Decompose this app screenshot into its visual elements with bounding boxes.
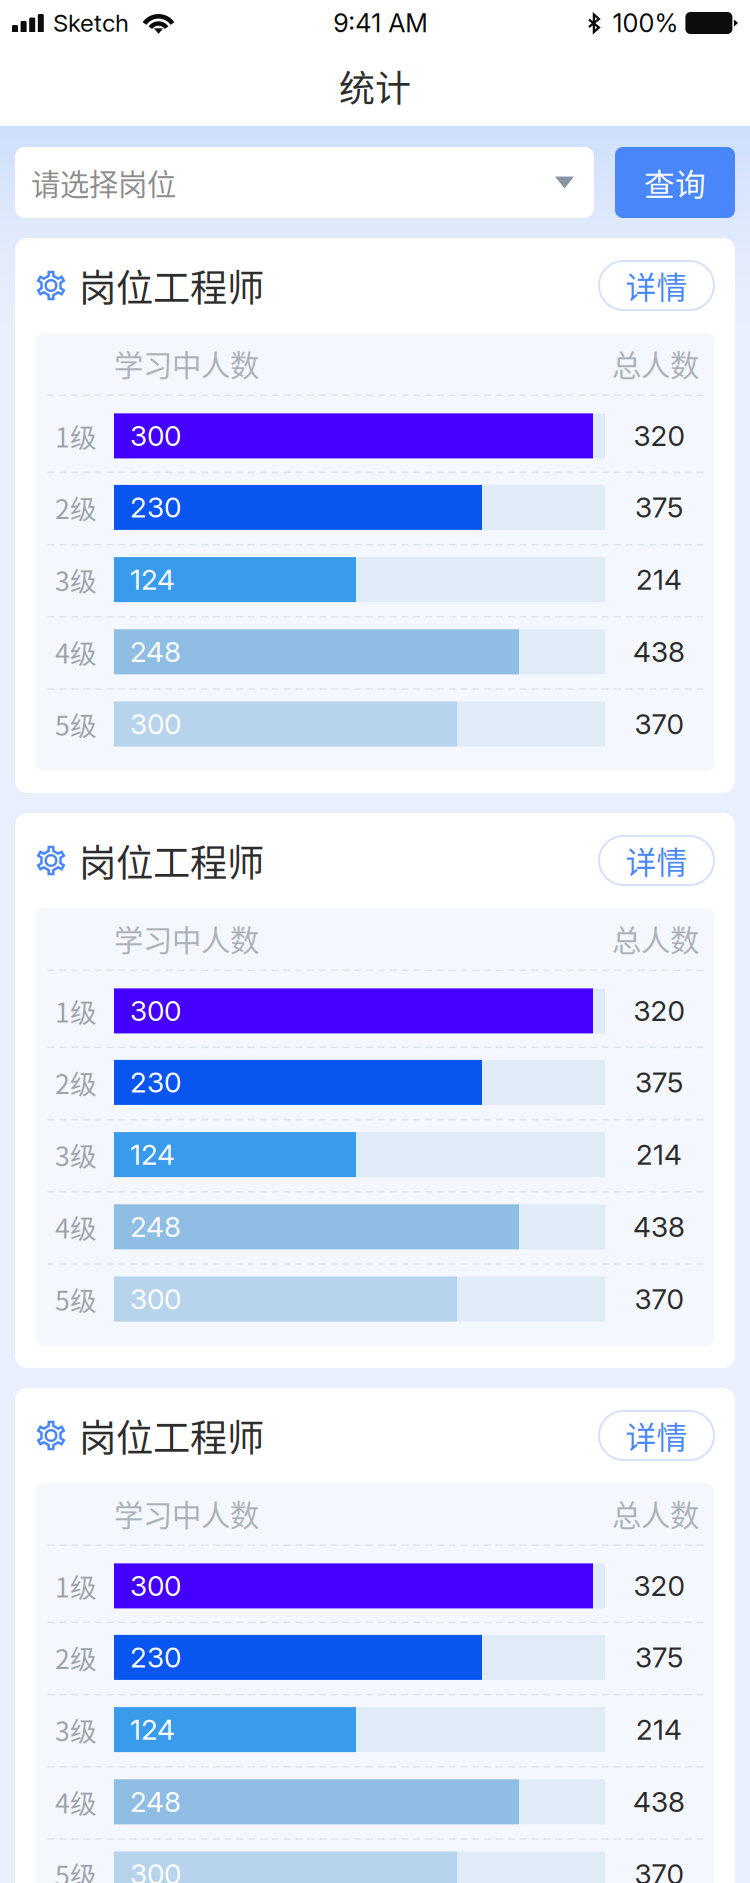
staticText: 320 [633,419,684,453]
staticText: 300 [130,1857,181,1883]
staticText: 320 [633,994,684,1028]
staticText: 学习中人数 [114,917,259,960]
staticText: 300 [130,1282,181,1316]
staticText: 370 [634,1857,683,1883]
staticText: 214 [636,1713,682,1747]
staticText: 1级 [55,417,97,455]
staticText: 1级 [55,1567,97,1605]
staticText: 9:41 AM [333,8,428,38]
staticText: 5级 [55,1855,97,1883]
staticText: 请选择岗位 [31,161,176,204]
staticText: 学习中人数 [114,1492,259,1535]
staticText: 总人数 [612,917,699,960]
staticText: 详情 [625,263,687,308]
staticText: 370 [634,707,683,741]
staticText: 统计 [339,60,411,112]
staticText: 3级 [55,1135,97,1174]
staticText: Sketch [53,8,129,37]
staticText: 438 [633,1210,685,1244]
staticText: 214 [636,1138,682,1172]
staticText: 230 [130,1640,181,1674]
staticText: 岗位工程师 [79,258,264,313]
staticText: 124 [130,1713,175,1747]
staticText: 300 [130,419,181,453]
button[interactable]: 详情 [599,1411,714,1460]
staticText: 375 [635,490,683,524]
staticText: 详情 [625,1413,687,1458]
staticText: 2级 [55,488,97,527]
staticText: 1级 [55,992,97,1030]
staticText: 300 [130,1569,181,1603]
staticText: 124 [130,563,175,597]
staticText: 300 [130,994,181,1028]
staticText: 375 [635,1065,683,1099]
staticText: 320 [633,1569,684,1603]
staticText: 5级 [55,1280,97,1318]
staticText: 查询 [644,160,706,205]
staticText: 3级 [55,1710,97,1749]
staticText: 岗位工程师 [79,1408,264,1463]
button[interactable]: 详情 [599,836,714,885]
staticText: 438 [633,1785,685,1819]
staticText: 438 [633,635,685,669]
staticText: 详情 [625,838,687,883]
staticText: 375 [635,1640,683,1674]
staticText: 124 [130,1138,175,1172]
staticText: 248 [130,1210,181,1244]
staticText: 2级 [55,1638,97,1677]
staticText: 4级 [55,1207,97,1246]
staticText: 370 [634,1282,683,1316]
button[interactable]: 请选择岗位 [15,147,594,218]
staticText: 岗位工程师 [79,833,264,888]
staticText: 3级 [55,560,97,599]
staticText: 总人数 [612,1492,699,1535]
staticText: 学习中人数 [114,342,259,385]
staticText: 230 [130,490,181,524]
staticText: 100% [612,8,678,38]
button[interactable]: 查询 [615,147,735,218]
staticText: 214 [636,563,682,597]
staticText: 248 [130,1785,181,1819]
staticText: 5级 [55,705,97,743]
staticText: 2级 [55,1063,97,1102]
button[interactable]: 详情 [599,261,714,310]
staticText: 4级 [55,632,97,671]
staticText: 230 [130,1065,181,1099]
staticText: 300 [130,707,181,741]
staticText: 248 [130,635,181,669]
staticText: 4级 [55,1782,97,1821]
staticText: 总人数 [612,342,699,385]
